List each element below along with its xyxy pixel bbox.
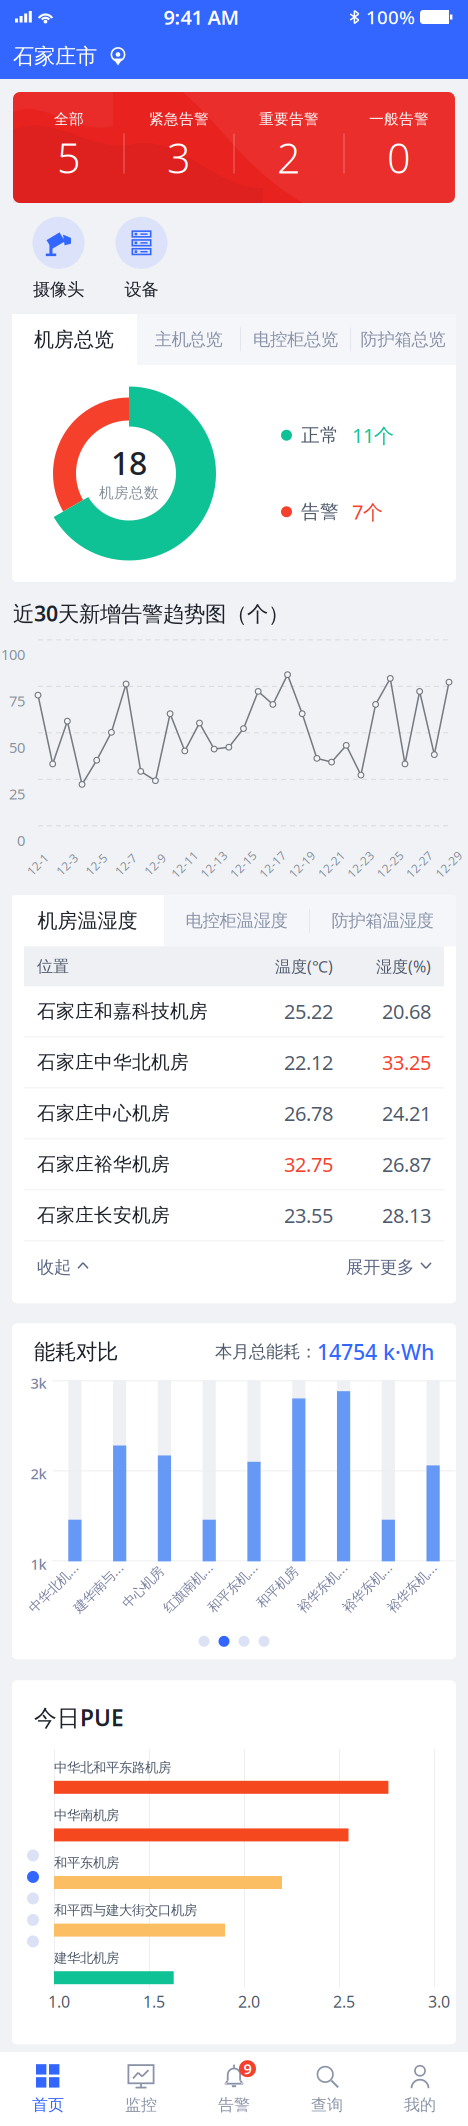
staticText: 和平东机房 <box>54 1855 119 1871</box>
button[interactable]: 第4页 <box>27 1914 39 1926</box>
button[interactable]: 展开更多 <box>346 1241 431 1293</box>
staticText: 本月总能耗： <box>215 1341 317 1362</box>
staticText: 电控柜总览 <box>253 329 338 350</box>
button[interactable]: 查询 <box>280 2052 373 2126</box>
staticText: 12-15 <box>227 856 259 872</box>
staticText: 12-19 <box>286 856 318 872</box>
staticText: 24.21 <box>382 1100 431 1127</box>
staticText: 石家庄中华北机房 <box>37 1051 189 1074</box>
staticText: 12-5 <box>84 856 109 872</box>
staticText: 重要告警 <box>259 110 319 128</box>
staticText: 一般告警 <box>369 110 429 128</box>
staticText: 25 <box>9 784 25 804</box>
staticText: 石家庄长安机房 <box>37 1204 170 1227</box>
staticText: 正常 <box>301 424 339 447</box>
button[interactable]: 首页 <box>1 2052 94 2126</box>
staticText: 首页 <box>32 2095 64 2115</box>
staticText: 3.0 <box>428 1991 450 2012</box>
staticText: 我的 <box>404 2095 436 2115</box>
button[interactable]: 一般告警 <box>344 92 453 203</box>
button[interactable]: 第5页 <box>27 1935 39 1947</box>
button[interactable]: 全部 <box>14 92 123 203</box>
staticText: 机房总数 <box>99 484 159 502</box>
button[interactable]: 摄像头 <box>17 208 100 308</box>
staticText: 石家庄中心机房 <box>37 1102 170 1125</box>
staticText: 查询 <box>311 2095 343 2115</box>
staticText: 湿度(%) <box>376 956 431 977</box>
staticText: 12-29 <box>433 856 465 872</box>
staticText: 和平东机... <box>201 1578 265 1596</box>
staticText: 100 <box>1 645 25 664</box>
button[interactable]: 电控柜温湿度 <box>164 895 310 946</box>
button[interactable]: 防护箱总览 <box>351 314 456 365</box>
staticText: 中华北和平东路机房 <box>54 1759 171 1776</box>
button[interactable]: 第2页 <box>218 1636 229 1647</box>
button[interactable]: 第4页 <box>258 1636 269 1647</box>
button[interactable]: 机房温湿度 <box>12 895 164 946</box>
button[interactable]: 第3页 <box>238 1636 249 1647</box>
staticText: 12-11 <box>168 856 200 872</box>
staticText: 5 <box>57 130 81 185</box>
staticText: 能耗对比 <box>34 1339 118 1365</box>
button[interactable]: 设备 <box>100 208 183 308</box>
staticText: 20.68 <box>382 998 431 1025</box>
staticText: 33.25 <box>382 1049 431 1076</box>
staticText: 12-7 <box>113 856 138 872</box>
staticText: 2.5 <box>333 1991 355 2012</box>
staticText: 26.78 <box>284 1100 333 1127</box>
staticText: 摄像头 <box>33 279 84 300</box>
staticText: 0 <box>17 831 25 850</box>
button[interactable]: 第1页 <box>198 1636 209 1647</box>
staticText: 9 <box>243 2059 251 2078</box>
staticText: 50 <box>9 738 25 757</box>
staticText: 1.5 <box>143 1991 165 2012</box>
button[interactable]: 监控 <box>94 2052 187 2126</box>
staticText: 9:41 AM <box>163 4 239 30</box>
staticText: 22.12 <box>284 1049 333 1076</box>
button[interactable]: 主机总览 <box>137 314 241 365</box>
staticText: 裕华东机... <box>335 1578 399 1596</box>
staticText: 红旗南机... <box>156 1578 220 1596</box>
staticText: 26.87 <box>382 1151 431 1178</box>
staticText: 28.13 <box>382 1202 431 1229</box>
button[interactable]: 切换城市 <box>107 44 129 68</box>
staticText: 电控柜温湿度 <box>185 910 287 931</box>
staticText: 12-21 <box>315 856 347 872</box>
staticText: 机房温湿度 <box>37 908 137 933</box>
button[interactable]: 我的 <box>373 2052 466 2126</box>
button[interactable]: 防护箱温湿度 <box>310 895 456 946</box>
button[interactable]: 重要告警 <box>234 92 343 203</box>
staticText: 2k <box>30 1464 46 1483</box>
staticText: 23.55 <box>284 1202 333 1229</box>
staticText: 12-1 <box>25 856 50 872</box>
staticText: 12-17 <box>257 856 289 872</box>
button[interactable]: 收起 <box>37 1241 88 1293</box>
staticText: 机房总览 <box>34 327 114 352</box>
button[interactable]: 紧急告警 <box>124 92 233 203</box>
staticText: 12-9 <box>143 856 168 872</box>
staticText: 14754 k·Wh <box>317 1338 434 1366</box>
staticText: 收起 <box>37 1257 71 1278</box>
staticText: 监控 <box>125 2095 157 2115</box>
staticText: 中心机房 <box>117 1579 169 1595</box>
staticText: 紧急告警 <box>149 110 209 128</box>
button[interactable]: 机房总览 <box>12 314 137 365</box>
staticText: 告警 <box>301 500 339 523</box>
staticText: 1k <box>30 1554 46 1574</box>
staticText: 石家庄和嘉科技机房 <box>37 1000 208 1023</box>
button[interactable]: 第2页 <box>27 1871 39 1883</box>
button[interactable]: 第1页 <box>27 1849 39 1861</box>
staticText: 建华北机房 <box>54 1950 119 1966</box>
button[interactable]: 9 <box>187 2052 280 2126</box>
staticText: 11个 <box>352 422 394 448</box>
staticText: 12-25 <box>374 856 406 872</box>
staticText: 12-27 <box>403 856 435 872</box>
staticText: 25.22 <box>284 998 333 1025</box>
staticText: 3 <box>167 130 191 185</box>
staticText: 1.0 <box>48 1991 70 2012</box>
button[interactable]: 第3页 <box>27 1892 39 1904</box>
staticText: 和平机房 <box>251 1579 303 1595</box>
staticText: 32.75 <box>284 1151 333 1178</box>
button[interactable]: 电控柜总览 <box>241 314 351 365</box>
staticText: 12-13 <box>198 856 230 872</box>
